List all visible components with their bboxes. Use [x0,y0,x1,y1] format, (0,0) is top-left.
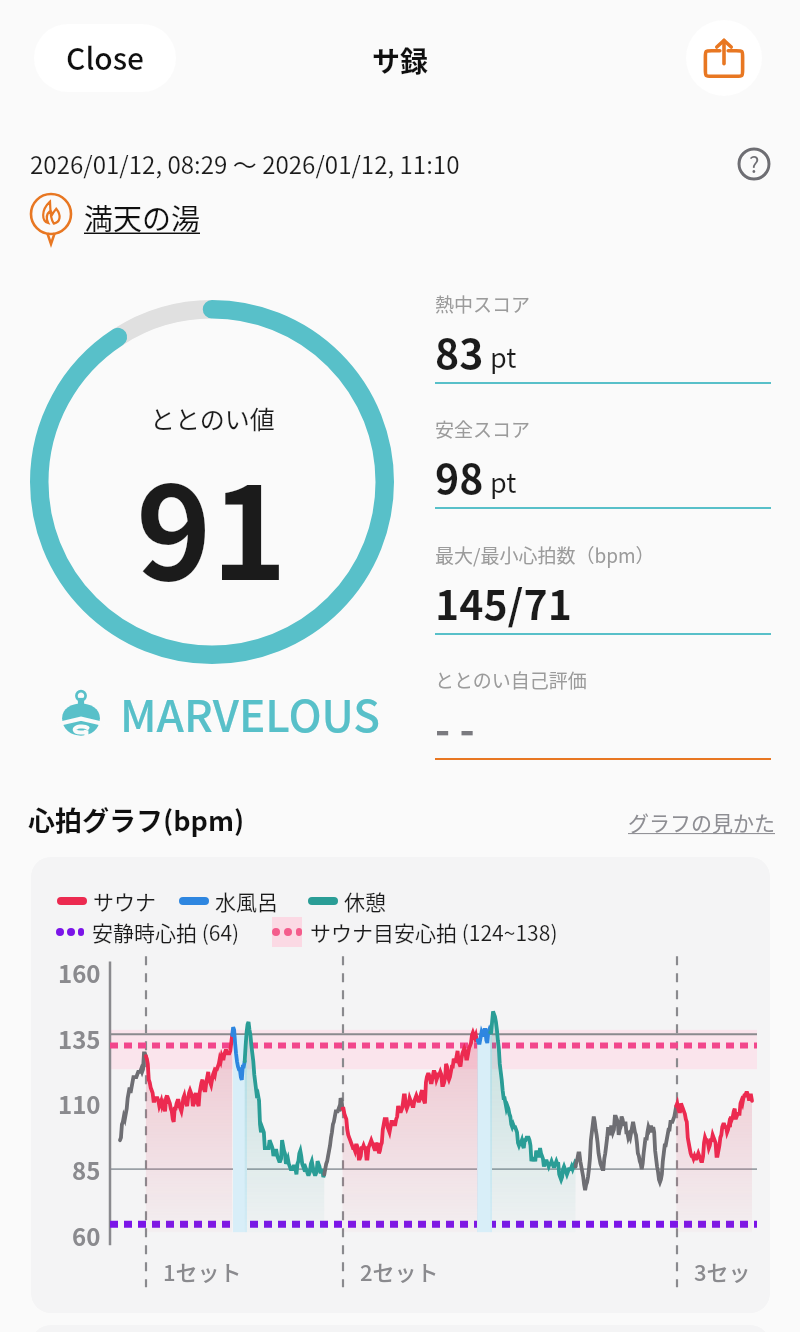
staticText: pt [484,462,517,501]
button[interactable]: Share [686,20,762,96]
staticText: 98 [435,446,484,505]
staticText: グラフの見かた [628,807,775,837]
button[interactable]: グラフの見かた [628,807,775,837]
staticText: 91 [136,432,288,617]
staticText: 安静時心拍 (64) [92,917,240,947]
staticText: 1セット [163,1255,242,1287]
staticText: 休憩 [344,886,386,916]
staticText: 2026/01/12, 08:29 〜 2026/01/12, 11:10 [30,146,460,181]
staticText: 160 [58,955,101,990]
staticText: サウナ [93,886,156,916]
staticText: サウナ目安心拍 (124~138) [310,917,558,947]
staticText: 最大/最小心拍数（bpm） [435,541,655,569]
staticText: 満天の湯 [84,196,201,238]
staticText: pt [484,337,517,376]
staticText: 2セット [360,1255,439,1287]
staticText: 水風呂 [215,886,278,916]
button[interactable]: 満天の湯 [26,192,201,242]
staticText: - - [435,697,475,756]
staticText: 110 [58,1086,101,1121]
staticText: 熱中スコア [435,290,531,318]
staticText: ? [749,147,760,179]
staticText: 3セッ [694,1255,751,1287]
staticText: Close [66,35,145,78]
button[interactable]: Help [737,147,771,181]
button[interactable]: Close [34,24,176,92]
staticText: 135 [58,1021,101,1056]
staticText: MARVELOUS [120,681,381,745]
staticText: ととのい値 [150,400,275,436]
staticText: ととのい自己評価 [435,666,587,694]
staticText: サ録 [372,40,429,81]
staticText: 心拍グラフ(bpm) [28,800,245,839]
staticText: 60 [72,1218,101,1253]
staticText: 安全スコア [435,415,531,443]
staticText: 85 [72,1152,101,1187]
staticText: 145/71 [435,572,572,631]
staticText: 83 [435,321,484,380]
